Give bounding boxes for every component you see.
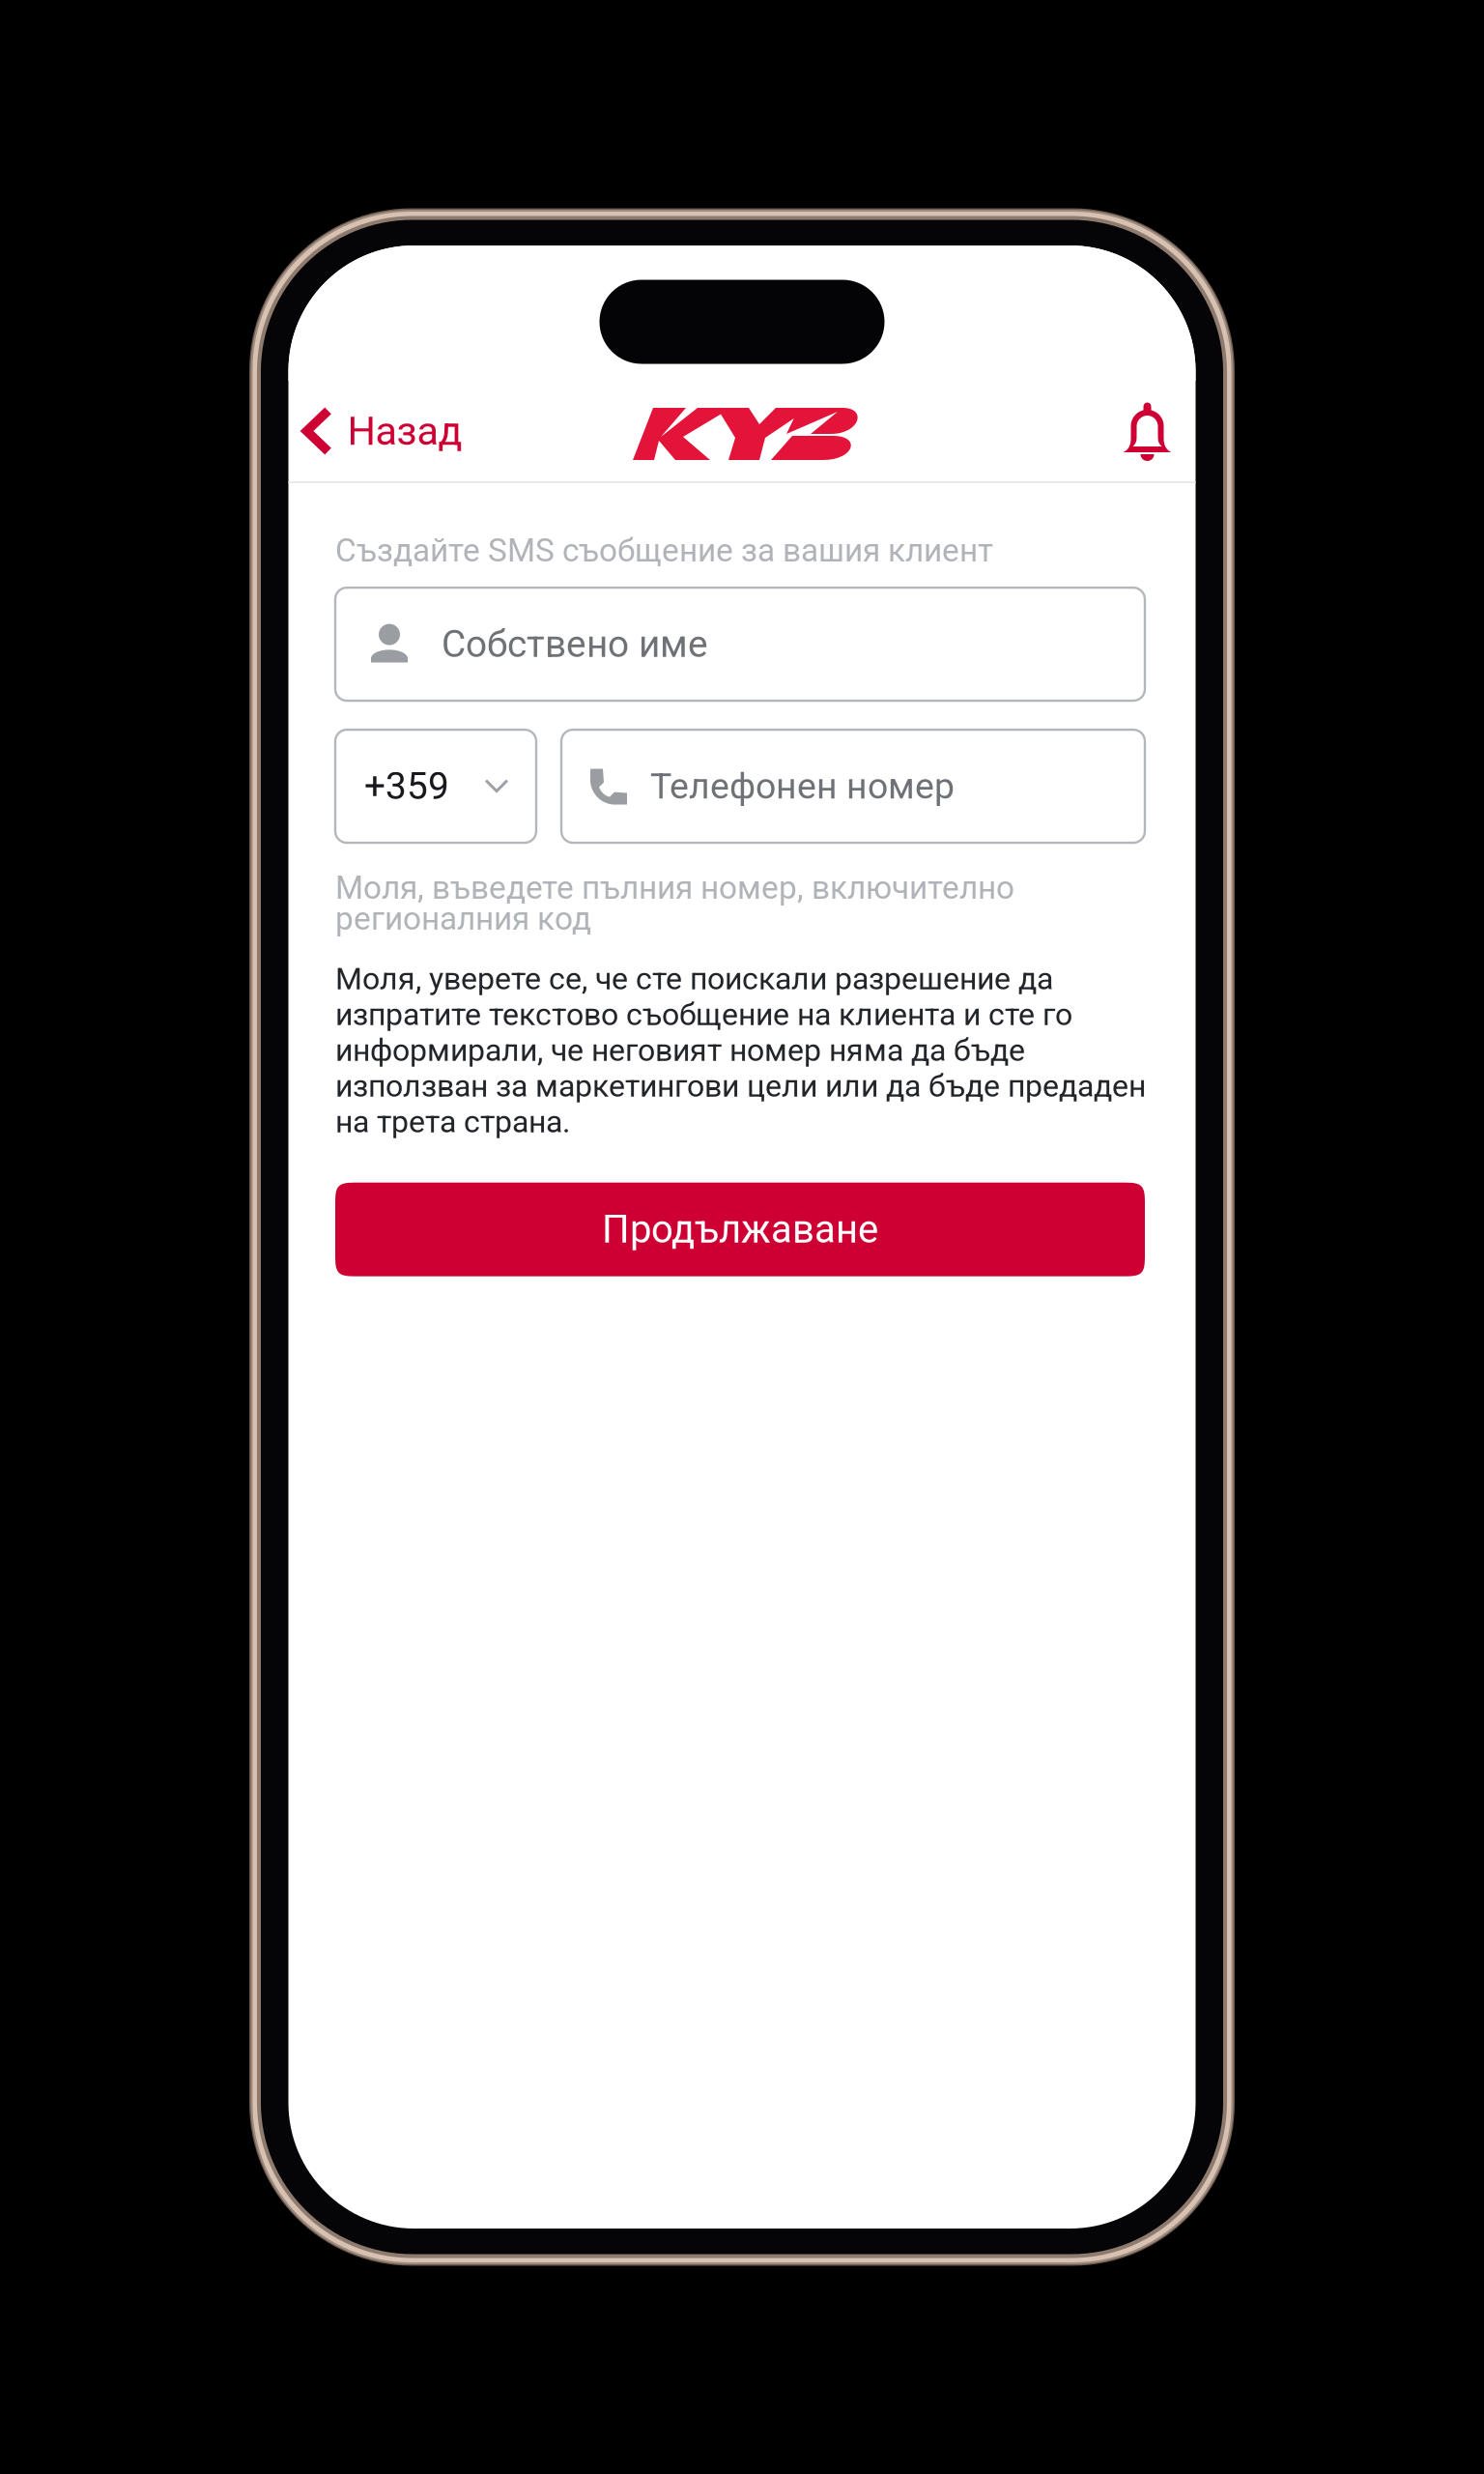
staticText: Собствено име: [442, 622, 708, 666]
staticText: Моля, въведете пълния номер, включително…: [335, 869, 1014, 938]
button[interactable]: Продължаване: [335, 1183, 1145, 1276]
staticText: +359: [364, 764, 449, 808]
staticText: Продължаване: [602, 1207, 878, 1252]
staticText: Моля, уверете се, че сте поискали разреш…: [335, 961, 1146, 1140]
staticText: Телефонен номер: [650, 765, 955, 807]
button[interactable]: Notifications: [1101, 381, 1196, 481]
button[interactable]: Country dialling code: [335, 730, 536, 843]
staticText: Назад: [347, 408, 462, 454]
staticText: Създайте SMS съобщение за вашия клиент: [335, 532, 993, 569]
button[interactable]: Назад: [288, 381, 474, 481]
